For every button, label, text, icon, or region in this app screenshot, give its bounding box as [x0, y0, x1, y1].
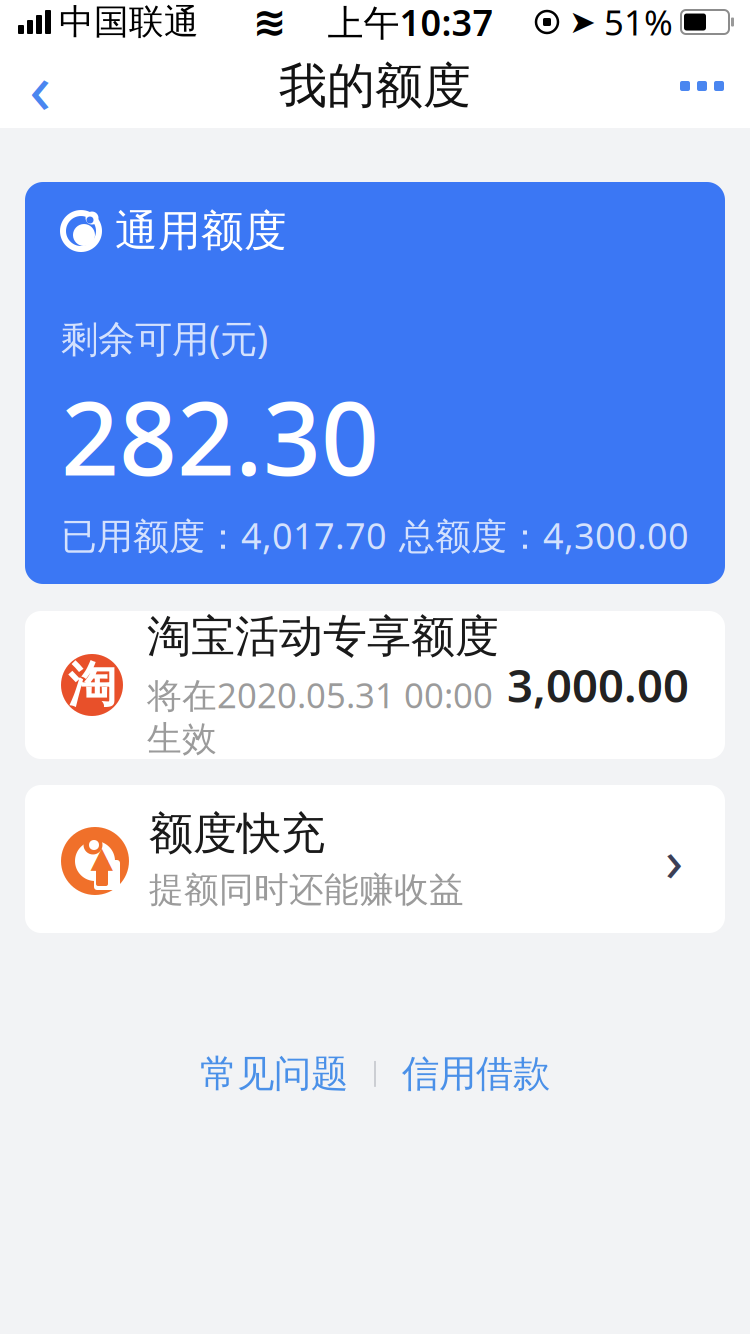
- staticText: 将在2020.05.31 00:00生效: [147, 672, 493, 760]
- staticText: 通用额度: [115, 205, 287, 257]
- staticText: 淘宝活动专享额度: [147, 610, 499, 664]
- staticText: 282.30: [61, 369, 379, 503]
- staticText: 总额度：4,300.00: [399, 511, 689, 559]
- button[interactable]: 更多: [654, 44, 750, 128]
- staticText: 中国联通: [59, 1, 199, 43]
- staticText: ›: [665, 820, 683, 898]
- staticText: 额度快充: [149, 807, 325, 861]
- staticText: ‹: [29, 38, 51, 134]
- staticText: 3,000.00: [507, 655, 689, 715]
- staticText: 信用借款: [402, 1051, 550, 1097]
- staticText: 已用额度：4,017.70: [61, 511, 387, 559]
- button[interactable]: 返回: [0, 44, 80, 128]
- staticText: ▲: [90, 840, 113, 874]
- staticText: 51%: [604, 0, 673, 45]
- button[interactable]: 淘: [25, 611, 725, 759]
- staticText: 提额同时还能赚收益: [149, 869, 464, 911]
- staticText: ≋: [253, 0, 287, 45]
- button[interactable]: ▲: [25, 785, 725, 933]
- staticText: 上午10:37: [327, 0, 493, 46]
- staticText: 淘: [68, 655, 116, 714]
- staticText: 剩余可用(元): [61, 313, 268, 363]
- button[interactable]: 常见问题: [188, 1043, 360, 1105]
- button[interactable]: 信用借款: [390, 1043, 562, 1105]
- staticText: 常见问题: [200, 1051, 348, 1097]
- staticText: 我的额度: [279, 56, 471, 115]
- staticText: ➤: [569, 4, 596, 40]
